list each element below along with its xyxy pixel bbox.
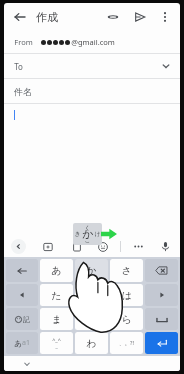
button[interactable]: 確定 bbox=[145, 332, 178, 354]
staticText: こ bbox=[84, 236, 91, 244]
staticText: ら bbox=[121, 313, 132, 326]
button[interactable]: その他のオプション bbox=[156, 8, 174, 26]
staticText: か bbox=[82, 227, 94, 241]
staticText: は bbox=[121, 289, 132, 302]
button[interactable]: その他 bbox=[131, 239, 146, 254]
button[interactable]: 画像 bbox=[40, 239, 55, 254]
staticText: く bbox=[84, 224, 91, 232]
button[interactable]: To bbox=[4, 54, 180, 79]
button[interactable]: From bbox=[4, 31, 180, 54]
staticText: き bbox=[74, 230, 81, 238]
staticText: あ bbox=[51, 264, 62, 277]
button[interactable]: 削除 bbox=[145, 259, 178, 282]
staticText: 件名 bbox=[14, 86, 32, 97]
staticText: ま bbox=[51, 313, 62, 326]
button[interactable]: クリップボード bbox=[69, 239, 84, 254]
staticText: 、。?! bbox=[119, 339, 134, 347]
staticText: あ bbox=[14, 339, 22, 348]
button[interactable]: や bbox=[75, 308, 108, 330]
button[interactable]: さ bbox=[110, 259, 143, 282]
staticText: _ bbox=[55, 343, 58, 350]
button[interactable]: 入力モード bbox=[6, 332, 38, 354]
staticText: a1 bbox=[22, 338, 30, 348]
button[interactable]: 句読点 bbox=[110, 332, 143, 354]
staticText: 記 bbox=[23, 315, 30, 324]
button[interactable]: 添付 bbox=[103, 7, 123, 27]
button[interactable]: な bbox=[75, 284, 108, 306]
button[interactable]: あ bbox=[40, 259, 73, 282]
staticText: た bbox=[51, 289, 62, 302]
staticText: わ bbox=[86, 337, 97, 350]
staticText: け bbox=[94, 230, 101, 238]
button[interactable]: 前へ bbox=[11, 239, 26, 254]
button[interactable]: 顔文字 bbox=[40, 332, 73, 354]
button[interactable]: 戻る bbox=[10, 7, 30, 27]
staticText: From bbox=[14, 37, 33, 47]
button[interactable]: ら bbox=[110, 308, 143, 330]
button[interactable]: スペース bbox=[145, 308, 178, 330]
button[interactable] bbox=[4, 104, 180, 235]
button[interactable]: 音声入力 bbox=[158, 239, 173, 254]
staticText: @gmail.com bbox=[71, 37, 115, 47]
button[interactable]: 絵文字 bbox=[95, 239, 110, 254]
button[interactable]: ま bbox=[40, 308, 73, 330]
button[interactable]: か bbox=[75, 259, 108, 282]
staticText: 作成 bbox=[36, 10, 58, 24]
button[interactable]: 送信 bbox=[130, 7, 150, 27]
button[interactable]: 右 bbox=[145, 284, 178, 306]
button[interactable]: キーボードを閉じる bbox=[21, 358, 33, 370]
button[interactable]: 元に戻す bbox=[6, 259, 38, 282]
staticText: や bbox=[86, 313, 97, 326]
staticText: To bbox=[14, 61, 23, 72]
button[interactable]: は bbox=[110, 284, 143, 306]
staticText: さ bbox=[121, 264, 132, 277]
staticText: ^_^ bbox=[52, 336, 61, 343]
button[interactable]: た bbox=[40, 284, 73, 306]
staticText: か bbox=[86, 264, 97, 277]
button[interactable]: わ bbox=[75, 332, 108, 354]
button[interactable]: 記号 bbox=[6, 308, 38, 330]
button[interactable]: 件名 bbox=[4, 79, 180, 104]
button[interactable]: 左 bbox=[6, 284, 38, 306]
